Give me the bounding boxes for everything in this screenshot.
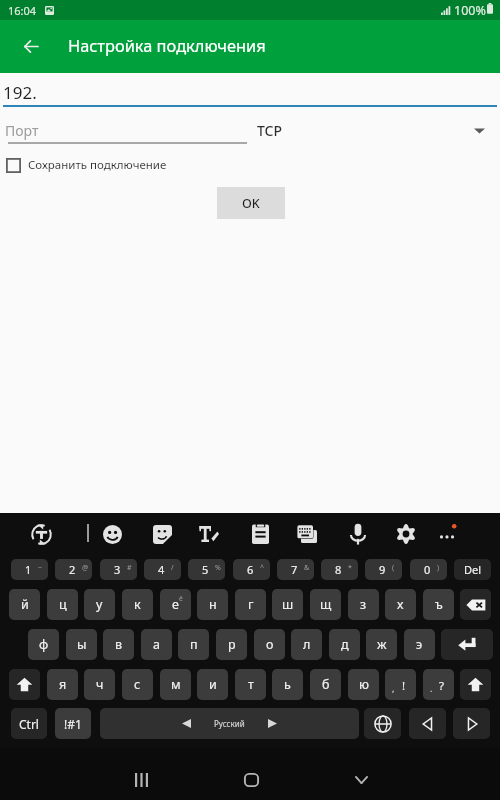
- button[interactable]: з: [348, 589, 379, 620]
- staticText: (: [392, 563, 395, 573]
- button[interactable]: 1: [11, 559, 48, 580]
- button[interactable]: Space: [100, 708, 359, 739]
- button[interactable]: Enter: [441, 629, 493, 660]
- button[interactable]: 6: [233, 559, 270, 580]
- button[interactable]: Shift: [9, 669, 40, 700]
- staticText: 2: [69, 562, 76, 577]
- button[interactable]: .: [423, 669, 454, 700]
- button[interactable]: Move left: [409, 708, 446, 739]
- button[interactable]: ф: [28, 629, 59, 660]
- button[interactable]: с: [122, 669, 153, 700]
- button[interactable]: !#1: [55, 708, 91, 739]
- button[interactable]: о: [254, 629, 285, 660]
- button[interactable]: д: [329, 629, 360, 660]
- staticText: е: [172, 596, 179, 613]
- button[interactable]: Emoji: [97, 519, 127, 549]
- button[interactable]: ч: [84, 669, 115, 700]
- button[interactable]: е: [160, 589, 191, 620]
- staticText: ц: [59, 596, 67, 613]
- button[interactable]: More options: [432, 519, 462, 549]
- button[interactable]: 0: [410, 559, 447, 580]
- staticText: й: [21, 596, 29, 613]
- staticText: Сохранить подключение: [28, 157, 167, 173]
- button[interactable]: Keyboard layout: [292, 519, 322, 549]
- staticText: ^: [260, 563, 265, 573]
- button[interactable]: Del: [454, 559, 491, 580]
- button[interactable]: ю: [348, 669, 379, 700]
- staticText: г: [248, 596, 254, 613]
- staticText: Настройка подключения: [68, 34, 266, 56]
- button[interactable]: ы: [66, 629, 97, 660]
- button[interactable]: Home: [231, 760, 271, 800]
- button[interactable]: ь: [272, 669, 303, 700]
- button[interactable]: ш: [272, 589, 303, 620]
- button[interactable]: Text edit: [194, 519, 224, 549]
- staticText: 16:04: [8, 3, 37, 18]
- button[interactable]: п: [178, 629, 209, 660]
- button[interactable]: ж: [366, 629, 397, 660]
- button[interactable]: Stickers: [147, 519, 177, 549]
- button[interactable]: Shift: [460, 669, 491, 700]
- button[interactable]: Protocol dropdown: [470, 121, 488, 139]
- button[interactable]: Сохранить подключение: [6, 154, 167, 176]
- button[interactable]: в: [103, 629, 134, 660]
- button[interactable]: Recent apps: [121, 760, 161, 800]
- button[interactable]: ц: [47, 589, 78, 620]
- button[interactable]: Change language: [364, 708, 401, 739]
- button[interactable]: й: [9, 589, 40, 620]
- staticText: ~: [38, 563, 43, 573]
- staticText: ?: [439, 678, 444, 694]
- staticText: ё: [179, 594, 183, 604]
- button[interactable]: р: [216, 629, 247, 660]
- button[interactable]: 8: [321, 559, 358, 580]
- button[interactable]: к: [122, 589, 153, 620]
- staticText: т: [248, 676, 254, 693]
- button[interactable]: я: [47, 669, 78, 700]
- staticText: я: [59, 676, 67, 693]
- button[interactable]: ъ: [423, 589, 454, 620]
- button[interactable]: 3: [100, 559, 137, 580]
- button[interactable]: л: [291, 629, 322, 660]
- button[interactable]: щ: [310, 589, 341, 620]
- button[interactable]: и: [197, 669, 228, 700]
- button[interactable]: OK: [217, 187, 285, 219]
- button[interactable]: м: [160, 669, 191, 700]
- button[interactable]: т: [235, 669, 266, 700]
- button[interactable]: 7: [277, 559, 314, 580]
- button[interactable]: Voice input: [343, 519, 373, 549]
- button[interactable]: Settings: [391, 519, 421, 549]
- staticText: !: [402, 678, 406, 694]
- staticText: ш: [282, 596, 294, 613]
- button[interactable]: г: [235, 589, 266, 620]
- button[interactable]: Backspace: [460, 589, 491, 620]
- staticText: с: [134, 676, 141, 693]
- button[interactable]: э: [404, 629, 435, 660]
- button[interactable]: Back: [14, 29, 48, 63]
- button[interactable]: у: [84, 589, 115, 620]
- staticText: ь: [284, 676, 291, 693]
- button[interactable]: Move right: [453, 708, 490, 739]
- staticText: п: [190, 636, 198, 653]
- button[interactable]: а: [141, 629, 172, 660]
- button[interactable]: б: [310, 669, 341, 700]
- button[interactable]: 9: [365, 559, 402, 580]
- button[interactable]: 192.: [0, 78, 500, 106]
- staticText: в: [115, 636, 123, 653]
- button[interactable]: Clipboard: [245, 519, 275, 549]
- button[interactable]: н: [197, 589, 228, 620]
- button[interactable]: Ctrl: [11, 708, 47, 739]
- staticText: б: [322, 676, 330, 693]
- staticText: 9: [379, 562, 386, 577]
- staticText: у: [96, 596, 103, 613]
- staticText: р: [228, 636, 236, 653]
- staticText: ю: [359, 676, 369, 693]
- staticText: и: [209, 676, 217, 693]
- button[interactable]: 4: [144, 559, 181, 580]
- button[interactable]: ,: [385, 669, 416, 700]
- button[interactable]: Hide keyboard: [341, 760, 381, 800]
- button[interactable]: 5: [188, 559, 225, 580]
- staticText: ): [437, 563, 440, 573]
- button[interactable]: х: [385, 589, 416, 620]
- button[interactable]: Translate: [26, 519, 56, 549]
- button[interactable]: 2: [55, 559, 92, 580]
